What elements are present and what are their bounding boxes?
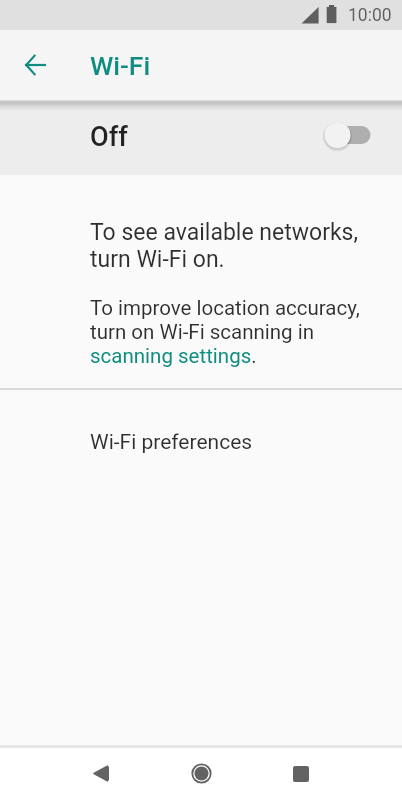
staticText: To see available networks, turn Wi-Fi on… [90, 219, 359, 272]
staticText: Off [90, 121, 128, 153]
button[interactable]: Back [61, 746, 141, 801]
button[interactable]: Wi-Fi preferences [0, 390, 402, 494]
button[interactable]: Navigate up [15, 45, 55, 85]
button[interactable]: Recent apps [261, 746, 341, 801]
staticText: To improve location accuracy, turn on Wi… [90, 296, 360, 368]
button[interactable]: Home [161, 746, 241, 801]
staticText: Wi-Fi preferences [90, 430, 253, 455]
staticText: Wi-Fi [90, 50, 151, 81]
staticText: 10:00 [348, 5, 392, 26]
button[interactable]: Off [0, 100, 402, 175]
